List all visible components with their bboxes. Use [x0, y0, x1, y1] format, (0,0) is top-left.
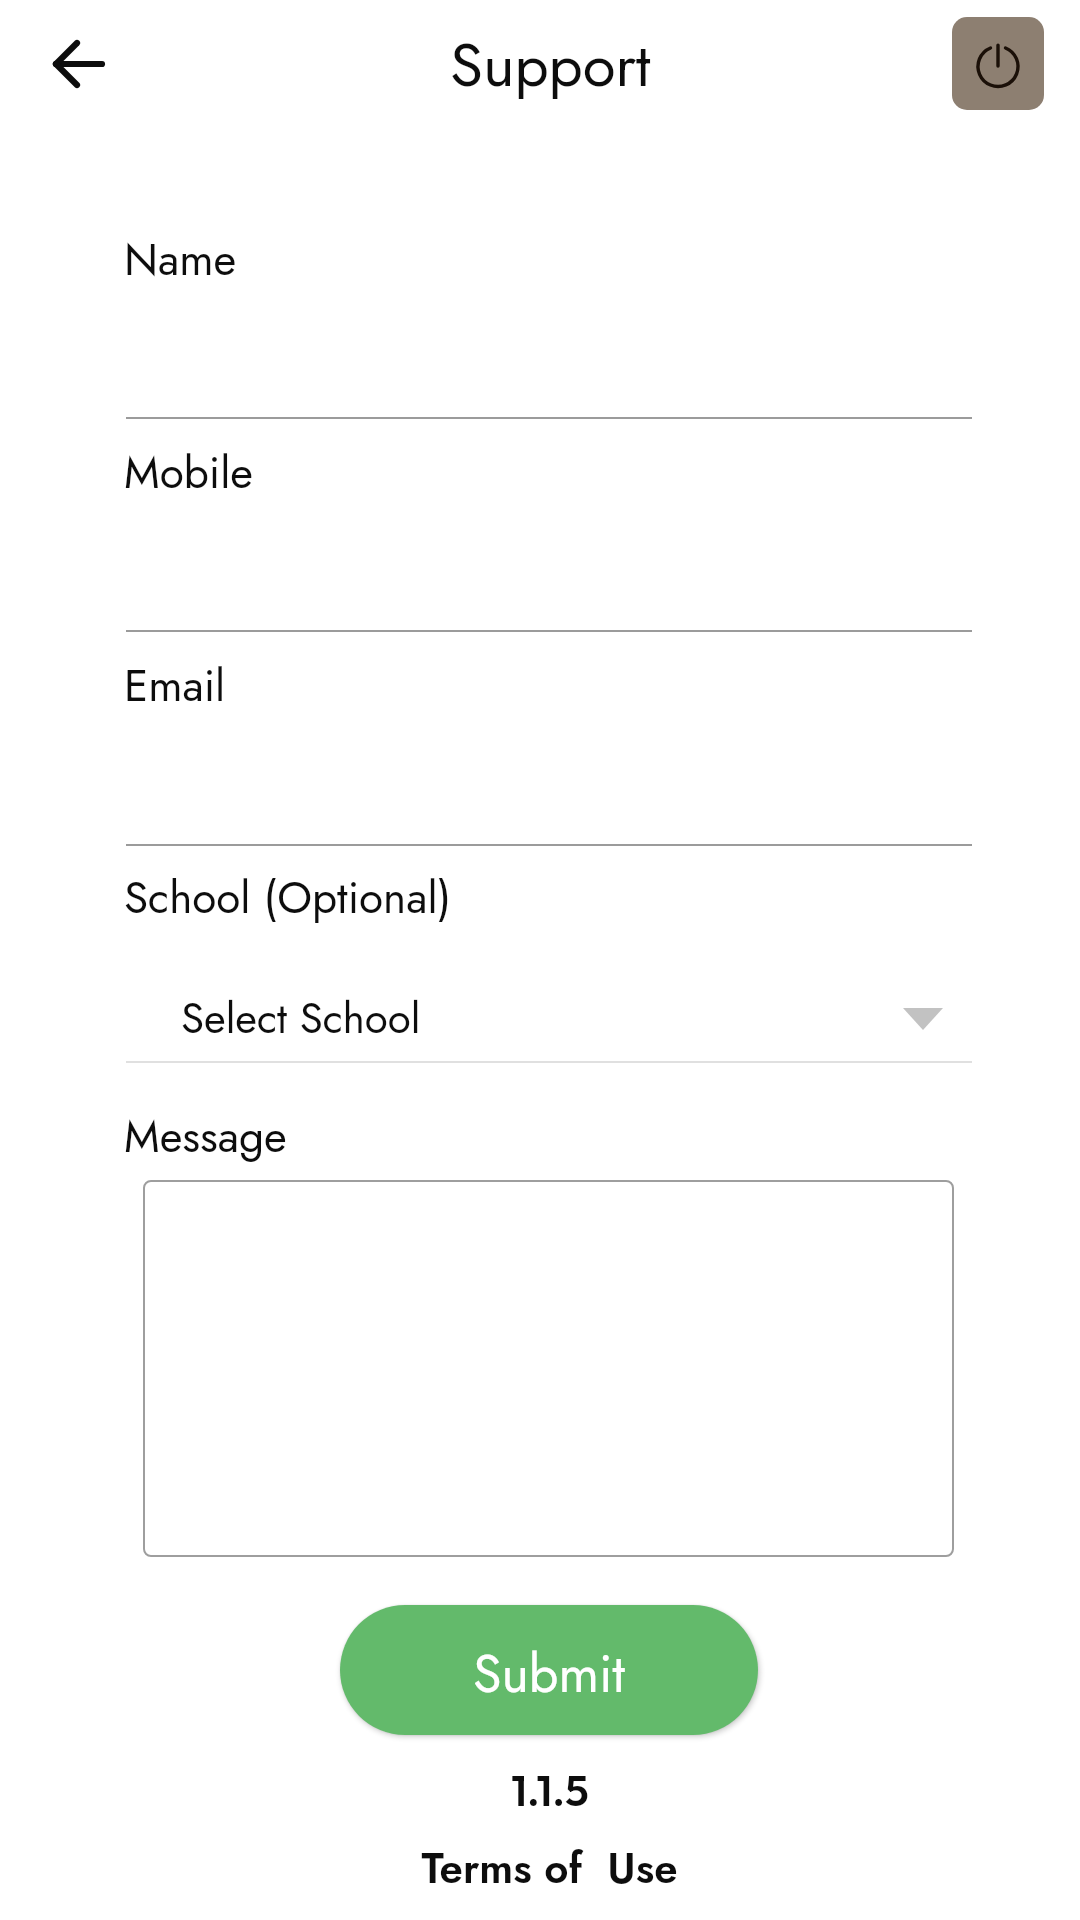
staticText: Terms of Use	[421, 1838, 678, 1899]
button[interactable]	[143, 1180, 954, 1557]
button[interactable]	[126, 267, 972, 417]
button[interactable]: Back	[27, 12, 131, 116]
staticText: School (Optional)	[124, 866, 452, 930]
staticText: Mobile	[124, 441, 253, 505]
staticText: Support	[450, 22, 651, 108]
button[interactable]: Terms of Use	[349, 1836, 749, 1900]
staticText: 1.1.5	[511, 1763, 589, 1817]
staticText: Email	[124, 654, 226, 718]
button[interactable]: Select School	[126, 965, 972, 1061]
button[interactable]	[126, 694, 972, 844]
button[interactable]: Submit	[340, 1605, 758, 1735]
button[interactable]: Power	[952, 17, 1044, 110]
staticText: Submit	[473, 1636, 625, 1711]
staticText: Message	[124, 1105, 287, 1169]
staticText: Select School	[181, 988, 421, 1049]
button[interactable]	[126, 480, 972, 630]
staticText: Name	[124, 228, 237, 292]
